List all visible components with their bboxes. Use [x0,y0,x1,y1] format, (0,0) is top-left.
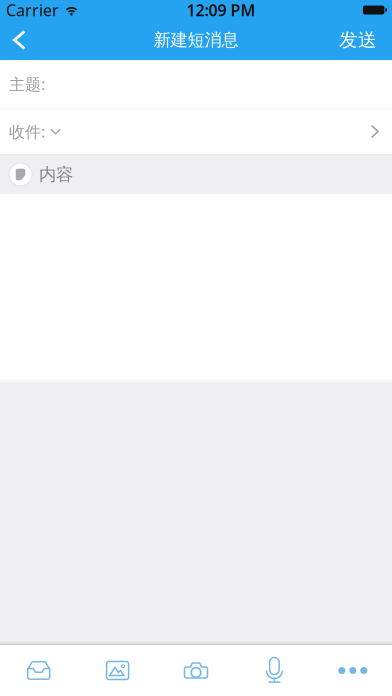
button[interactable]: Camera [157,645,235,695]
button[interactable]: Photo library [78,645,157,695]
staticText: 内容 [39,164,73,185]
button[interactable]: Inbox [0,645,78,695]
button[interactable]: 收件: [0,108,392,154]
staticText: 主题: [9,73,45,95]
button[interactable]: Back [0,20,42,60]
button[interactable]: Voice recording [235,645,314,695]
button[interactable]: 发送 [323,20,392,60]
staticText: 12:09 PM [186,0,255,21]
button[interactable]: 主题: [0,60,392,108]
staticText: 收件: [9,121,45,142]
button[interactable]: More [314,645,392,695]
staticText: 新建短消息 [153,29,238,51]
staticText: 发送 [339,28,377,51]
staticText: Carrier [6,0,59,21]
